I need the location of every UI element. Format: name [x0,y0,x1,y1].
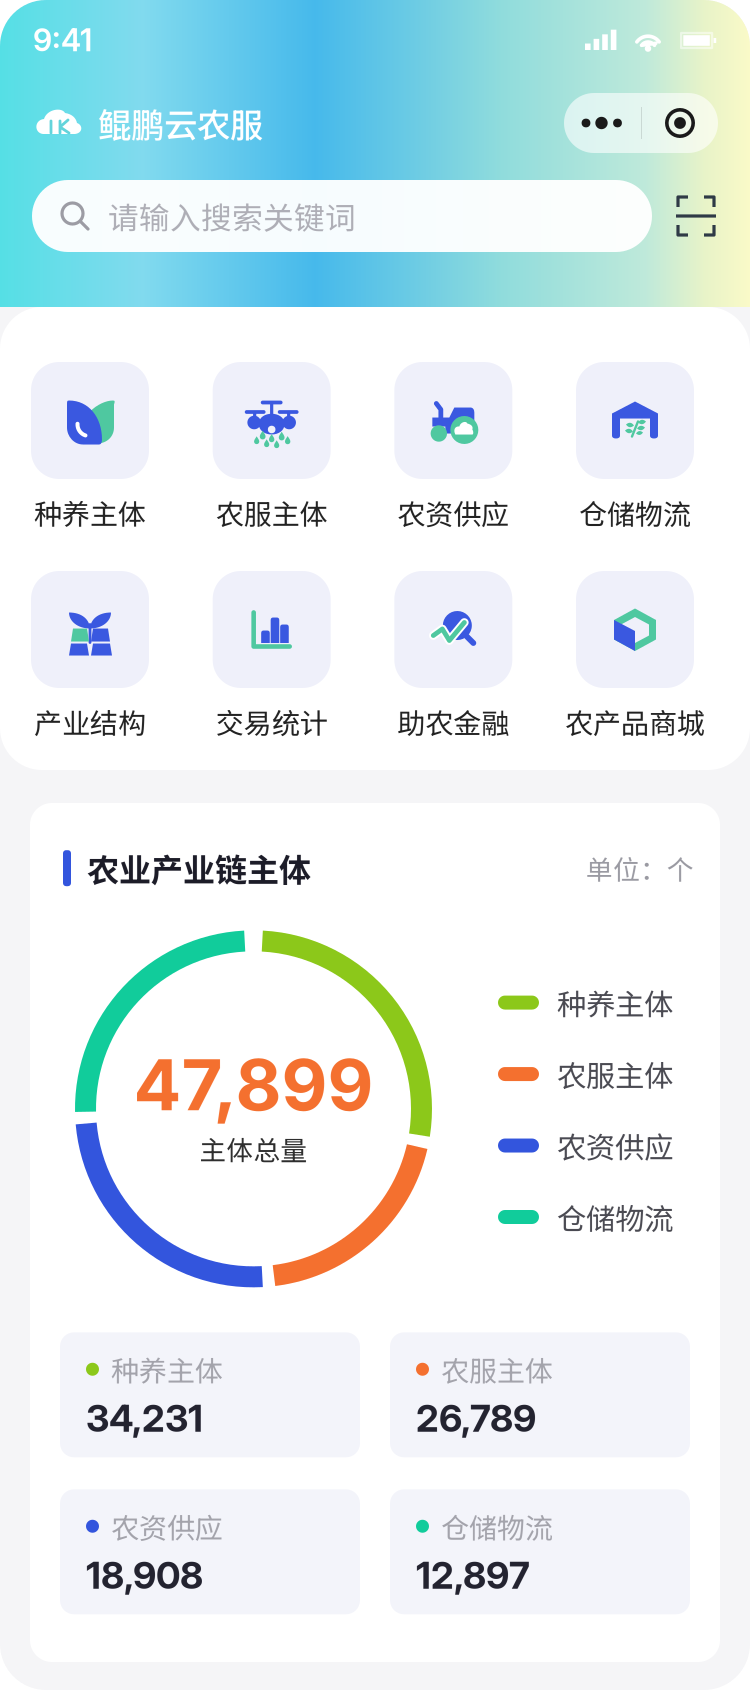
staticText: 产业结构 [34,701,146,742]
button[interactable]: 种养主体 [60,1332,360,1457]
staticText: 34,231 [86,1395,203,1441]
staticText: 47,899 [133,1042,373,1127]
staticText: 仓储物流 [557,1196,673,1238]
button[interactable]: 农资供应 [60,1489,360,1614]
staticText: 交易统计 [216,701,328,742]
button[interactable]: 农产品商城 [576,571,694,688]
button[interactable]: 助农金融 [394,571,512,688]
staticText: 请输入搜索关键词 [108,194,356,238]
staticText: 主体总量 [199,1129,307,1168]
staticText: 农业产业链主体 [87,845,311,891]
staticText: 农服主体 [441,1349,553,1389]
button[interactable]: Close mini program [642,93,718,153]
staticText: 仓储物流 [441,1506,553,1546]
staticText: 9:41 [33,21,92,58]
staticText: 农服主体 [557,1053,673,1095]
button[interactable]: 种养主体 [31,362,149,479]
button[interactable]: More options [564,93,641,153]
staticText: 18,908 [86,1552,203,1598]
staticText: 农资供应 [111,1506,223,1546]
button[interactable]: 仓储物流 [390,1489,690,1614]
staticText: 农资供应 [397,492,509,533]
button[interactable]: 请输入搜索关键词 [32,180,652,252]
staticText: 助农金融 [397,701,509,742]
staticText: 单位：个 [586,849,694,887]
button[interactable]: 仓储物流 [576,362,694,479]
button[interactable]: 农资供应 [394,362,512,479]
staticText: 农产品商城 [565,701,705,742]
staticText: 12,897 [416,1552,530,1598]
staticText: 种养主体 [111,1349,223,1389]
staticText: 仓储物流 [579,492,691,533]
staticText: 农服主体 [216,492,328,533]
button[interactable]: 农服主体 [213,362,331,479]
button[interactable]: 产业结构 [31,571,149,688]
button[interactable]: 农服主体 [390,1332,690,1457]
staticText: 鲲鹏云农服 [98,99,263,147]
staticText: 农资供应 [557,1124,673,1167]
staticText: 26,789 [416,1395,536,1441]
button[interactable]: 交易统计 [213,571,331,688]
staticText: 种养主体 [34,492,146,533]
staticText: 种养主体 [557,981,673,1024]
button[interactable]: Scan QR code [652,194,724,238]
